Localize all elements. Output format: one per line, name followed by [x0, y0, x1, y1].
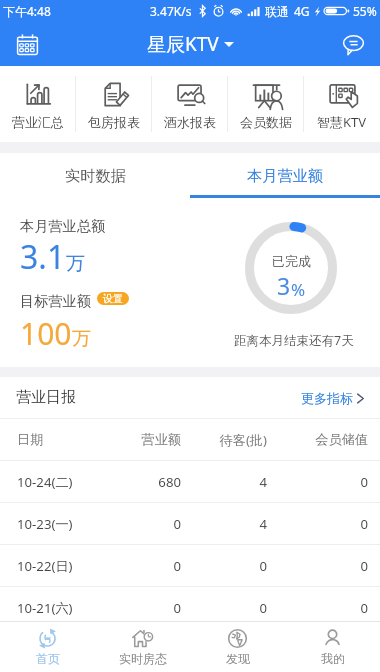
- staticText: 设置: [103, 292, 123, 305]
- button[interactable]: Messages: [334, 25, 372, 63]
- button[interactable]: Calendar: [8, 25, 46, 63]
- button[interactable]: 实时数据: [0, 153, 190, 198]
- staticText: 0: [181, 557, 267, 575]
- button[interactable]: 首页: [0, 622, 95, 672]
- staticText: 我的: [321, 651, 345, 666]
- staticText: 10-23(一): [17, 515, 103, 533]
- staticText: 0: [267, 557, 368, 575]
- staticText: 会员数据: [240, 114, 292, 130]
- staticText: 10-21(六): [17, 599, 103, 617]
- staticText: 10-24(二): [17, 473, 103, 491]
- staticText: 0: [267, 515, 368, 533]
- button[interactable]: 10-22(日): [0, 545, 380, 586]
- staticText: 联通: [265, 4, 289, 19]
- staticText: 0: [267, 599, 368, 617]
- staticText: 营业日报: [16, 388, 76, 407]
- staticText: 100: [20, 313, 72, 354]
- staticText: 会员储值: [267, 431, 368, 448]
- staticText: 4: [181, 473, 267, 491]
- button[interactable]: 会员数据: [228, 66, 304, 142]
- staticText: 下午4:48: [3, 3, 51, 19]
- staticText: 0: [103, 515, 181, 533]
- staticText: 实时数据: [65, 166, 126, 185]
- staticText: 距离本月结束还有7天: [234, 332, 354, 349]
- staticText: 包房报表: [88, 114, 140, 130]
- staticText: 万: [72, 327, 91, 351]
- button[interactable]: 10-24(二): [0, 461, 380, 502]
- button[interactable]: 我的: [285, 622, 380, 672]
- button[interactable]: 包房报表: [76, 66, 152, 142]
- button[interactable]: 实时房态: [95, 622, 190, 672]
- staticText: 酒水报表: [164, 114, 216, 130]
- staticText: 更多指标: [301, 390, 353, 406]
- staticText: 0: [103, 599, 181, 617]
- staticText: 实时房态: [119, 651, 167, 666]
- button[interactable]: 本月营业额: [190, 153, 380, 198]
- staticText: 4: [181, 515, 267, 533]
- staticText: 营业汇总: [12, 114, 64, 130]
- staticText: 3.1: [20, 235, 66, 279]
- button[interactable]: 智慧KTV: [304, 66, 380, 142]
- staticText: 4G: [294, 3, 310, 19]
- staticText: 0: [267, 473, 368, 491]
- button[interactable]: 发现: [190, 622, 285, 672]
- staticText: 本月营业总额: [20, 217, 106, 235]
- staticText: 发现: [226, 651, 250, 666]
- button[interactable]: 酒水报表: [152, 66, 228, 142]
- staticText: 目标营业额: [20, 292, 91, 310]
- staticText: 0: [103, 557, 181, 575]
- button[interactable]: 设置: [97, 292, 129, 305]
- staticText: 3: [277, 270, 291, 301]
- staticText: 已完成: [272, 253, 311, 269]
- staticText: %: [291, 278, 306, 301]
- staticText: 首页: [36, 651, 60, 666]
- staticText: 本月营业额: [247, 166, 323, 185]
- staticText: 680: [103, 473, 181, 491]
- staticText: 日期: [17, 431, 103, 448]
- staticText: 待客(批): [181, 431, 267, 449]
- button[interactable]: 星辰KTV: [147, 31, 234, 57]
- staticText: 万: [66, 252, 85, 276]
- button[interactable]: 更多指标: [301, 384, 364, 412]
- staticText: 星辰KTV: [147, 31, 219, 57]
- staticText: 10-22(日): [17, 557, 103, 575]
- staticText: 智慧KTV: [317, 113, 367, 131]
- staticText: 55%: [353, 3, 377, 19]
- button[interactable]: 10-23(一): [0, 503, 380, 544]
- button[interactable]: 日期: [0, 419, 380, 460]
- staticText: 3.47K/s: [150, 3, 192, 19]
- staticText: 营业额: [103, 431, 181, 448]
- staticText: 0: [181, 599, 267, 617]
- button[interactable]: 10-21(六): [0, 587, 380, 628]
- button[interactable]: 营业汇总: [0, 66, 76, 142]
